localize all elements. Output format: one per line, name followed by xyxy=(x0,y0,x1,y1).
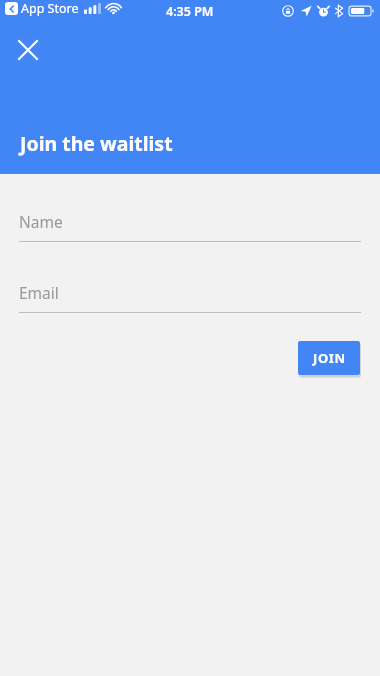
button[interactable]: Email xyxy=(19,279,361,313)
staticText: Email xyxy=(19,282,59,303)
button[interactable]: Close xyxy=(10,32,46,68)
button[interactable]: Name xyxy=(19,208,361,242)
staticText: 4:35 PM xyxy=(166,3,214,20)
staticText: App Store xyxy=(21,0,79,17)
button[interactable]: JOIN xyxy=(298,341,360,375)
staticText: JOIN xyxy=(313,349,346,367)
staticText: Join the waitlist xyxy=(20,130,173,157)
staticText: Name xyxy=(19,211,63,232)
